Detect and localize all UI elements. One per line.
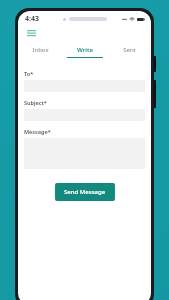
staticText: Inbox: [32, 46, 49, 54]
staticText: To*: [24, 70, 34, 77]
button[interactable]: Send Message: [55, 183, 115, 201]
staticText: Sent: [123, 46, 136, 54]
staticText: 4:43: [25, 14, 39, 24]
button[interactable]: Inbox: [18, 42, 63, 57]
button[interactable]: Menu: [24, 27, 38, 41]
button[interactable]: Write: [63, 42, 107, 57]
staticText: Message*: [24, 128, 51, 135]
staticText: Subject*: [24, 99, 47, 106]
staticText: Write: [77, 46, 93, 54]
button[interactable]: Sent: [107, 42, 151, 57]
staticText: Send Message: [64, 188, 106, 196]
